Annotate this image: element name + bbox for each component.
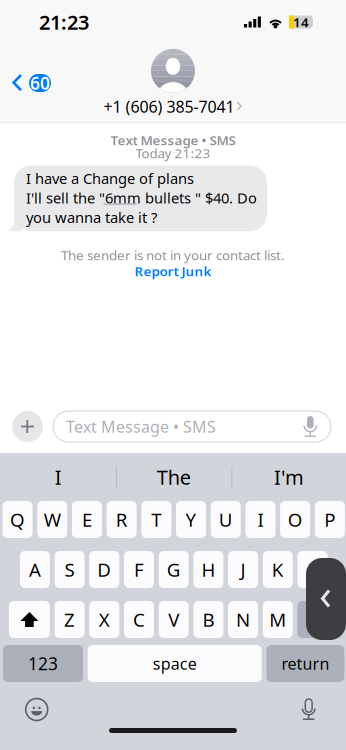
button[interactable]: V [159,601,189,638]
staticText: F [134,557,144,582]
button[interactable]: D [89,551,119,588]
staticText: I [55,464,62,490]
staticText: 21:23 [39,9,89,35]
button[interactable]: N [228,601,258,638]
button[interactable]: M [263,601,293,638]
button[interactable]: L [297,551,327,588]
button[interactable]: H [193,551,223,588]
button[interactable]: +1 (606) 385-7041 [103,49,242,117]
staticText: The [157,464,191,490]
staticText: I'm [274,464,304,490]
button[interactable]: A [20,551,50,588]
staticText: Report Junk [134,262,211,280]
staticText: M [269,607,286,632]
button[interactable]: Add attachment [12,411,43,442]
button[interactable]: R [107,501,137,538]
staticText: H [201,557,215,582]
staticText: I [257,507,263,532]
button[interactable]: Dictate [287,693,331,726]
staticText: J [241,557,246,582]
button[interactable]: The [116,457,231,497]
staticText: 123 [28,652,58,675]
staticText: Today 21:23 [135,144,210,162]
button[interactable]: E [72,501,102,538]
staticText: G [167,557,181,582]
staticText: Text Message • SMS [110,131,235,149]
button[interactable]: Q [2,501,32,538]
button[interactable]: return [266,645,344,682]
staticText: 14 [293,13,309,31]
staticText: T [151,507,161,532]
staticText: R [116,507,128,532]
staticText: bullets " $40. Do [141,188,257,208]
button[interactable]: C [124,601,154,638]
staticText: P [324,507,335,532]
button[interactable]: Report Junk [134,262,211,280]
staticText: return [281,653,329,674]
button[interactable]: space [88,645,262,682]
button[interactable]: F [124,551,154,588]
staticText: The sender is not in your contact list. [61,246,285,264]
button[interactable]: Y [176,501,206,538]
staticText: W [44,507,61,532]
staticText: D [97,557,111,582]
button[interactable]: Shift [9,601,50,638]
button[interactable]: X [89,601,119,638]
staticText: B [202,607,214,632]
staticText: I'll sell the [26,188,99,208]
button[interactable]: J [228,551,258,588]
staticText: Text Message • SMS [66,416,216,437]
button[interactable]: Delete [297,601,338,638]
button[interactable]: 123 [3,645,83,682]
button[interactable]: I'm [231,457,346,497]
button[interactable]: W [37,501,67,538]
staticText: Y [185,507,196,532]
staticText: Q [10,507,25,532]
staticText: "6mm [99,188,141,208]
button[interactable]: S [55,551,85,588]
staticText: space [153,653,197,674]
staticText: L [307,557,317,582]
staticText: you wanna take it ? [26,208,157,227]
staticText: K [272,557,284,582]
staticText: +1 (606) 385-7041 [103,96,234,117]
button[interactable]: P [315,501,345,538]
button[interactable]: T [141,501,171,538]
staticText: A [29,557,41,582]
button[interactable]: B [193,601,223,638]
button[interactable]: K [263,551,293,588]
staticText: N [236,607,250,632]
staticText: E [82,507,92,532]
staticText: Z [64,607,75,632]
button[interactable]: Z [55,601,85,638]
button[interactable]: I [245,501,275,538]
staticText: X [99,607,110,632]
button[interactable]: Dictate [302,416,331,437]
staticText: V [168,607,179,632]
staticText: C [133,607,145,632]
button[interactable]: O [280,501,310,538]
staticText: I have a Change of plans [26,169,194,188]
button[interactable]: 60 [0,52,59,114]
button[interactable]: G [159,551,189,588]
staticText: 60 [30,71,50,94]
staticText: S [65,557,75,582]
staticText: O [288,507,303,532]
button[interactable]: Emoji [15,693,59,726]
staticText: U [219,507,233,532]
button[interactable]: I [1,457,116,497]
button[interactable]: U [211,501,241,538]
